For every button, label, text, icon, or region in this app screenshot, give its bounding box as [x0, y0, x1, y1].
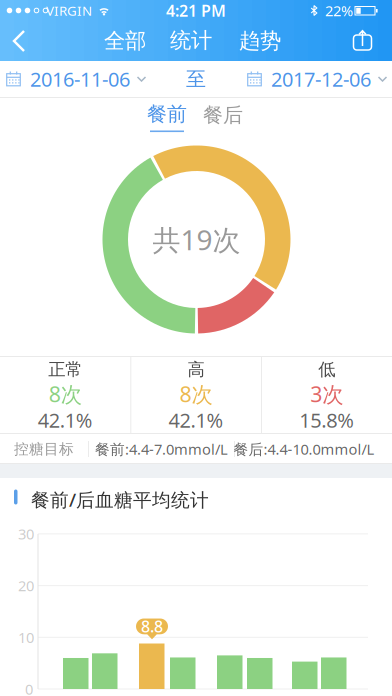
- staticText: 8次: [179, 380, 212, 408]
- button[interactable]: 2016-11-06: [6, 66, 146, 92]
- staticText: 8.8: [141, 616, 163, 637]
- staticText: 控糖目标: [14, 440, 74, 458]
- staticText: 42.1%: [38, 407, 93, 433]
- button[interactable]: 餐前: [147, 102, 187, 132]
- staticText: 共19次: [152, 221, 240, 258]
- staticText: 高: [187, 359, 204, 380]
- staticText: 餐前:4.4-7.0mmol/L: [95, 439, 228, 459]
- staticText: VIRGIN: [46, 2, 92, 19]
- staticText: 低: [318, 359, 335, 380]
- staticText: 餐后:4.4-10.0mmol/L: [233, 439, 374, 459]
- button[interactable]: 全部: [97, 21, 153, 61]
- staticText: 全部: [104, 28, 146, 54]
- staticText: 8次: [49, 380, 82, 408]
- staticText: 正常: [48, 359, 82, 380]
- staticText: 30: [18, 524, 34, 544]
- button[interactable]: Back: [0, 21, 44, 61]
- staticText: 统计: [170, 27, 212, 54]
- button[interactable]: 统计: [163, 23, 219, 60]
- staticText: 42.1%: [168, 407, 223, 433]
- staticText: 餐前: [147, 102, 187, 126]
- staticText: 10: [18, 628, 34, 647]
- staticText: 4:21 PM: [166, 0, 226, 21]
- staticText: 餐前/后血糖平均统计: [31, 487, 209, 512]
- staticText: 15.8%: [299, 407, 354, 433]
- staticText: 0: [25, 679, 33, 696]
- button[interactable]: 趋势: [232, 21, 288, 61]
- staticText: 餐后: [203, 103, 243, 127]
- button[interactable]: 2017-12-06: [247, 66, 387, 92]
- staticText: 22%: [325, 1, 353, 20]
- staticText: 3次: [310, 380, 343, 408]
- staticText: 2016-11-06: [30, 66, 130, 92]
- staticText: 至: [186, 67, 206, 91]
- staticText: 趋势: [239, 28, 281, 54]
- staticText: 2017-12-06: [271, 66, 371, 92]
- staticText: 20: [18, 576, 34, 595]
- button[interactable]: Share: [352, 29, 372, 51]
- button[interactable]: 餐后: [198, 100, 248, 130]
